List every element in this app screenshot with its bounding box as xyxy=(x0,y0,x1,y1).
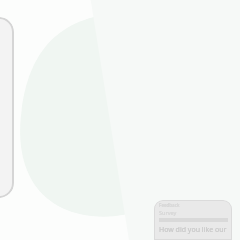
button[interactable]: Feedback xyxy=(154,200,232,240)
staticText: Feedback xyxy=(159,202,180,208)
button[interactable]: Previous card xyxy=(0,17,14,198)
staticText: How did you like our xyxy=(159,225,227,235)
staticText: Survey xyxy=(159,209,177,216)
